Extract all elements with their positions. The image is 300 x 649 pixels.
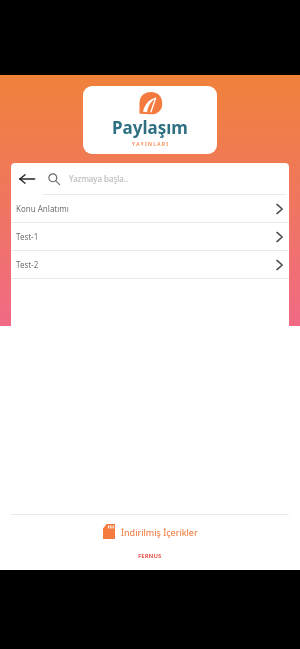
staticText: Yazmaya başla..: [69, 173, 129, 184]
staticText: FERNUS: [138, 552, 162, 560]
staticText: Test-1: [16, 231, 39, 242]
button[interactable]: Test-2: [11, 251, 289, 278]
button[interactable]: Konu Anlatımı: [11, 195, 289, 222]
staticText: Paylaşım: [112, 116, 188, 139]
staticText: İndirilmiş İçerikler: [121, 526, 198, 538]
staticText: Test-2: [16, 259, 39, 270]
button[interactable]: Paylaşım: [83, 86, 217, 154]
button[interactable]: İndirilmiş İçerikler: [11, 515, 289, 548]
button[interactable]: Search: [43, 168, 65, 190]
staticText: Konu Anlatımı: [16, 203, 69, 214]
button[interactable]: Test-1: [11, 223, 289, 250]
button[interactable]: Back: [11, 163, 43, 194]
staticText: Y A Y I N L A R I: [132, 141, 169, 148]
